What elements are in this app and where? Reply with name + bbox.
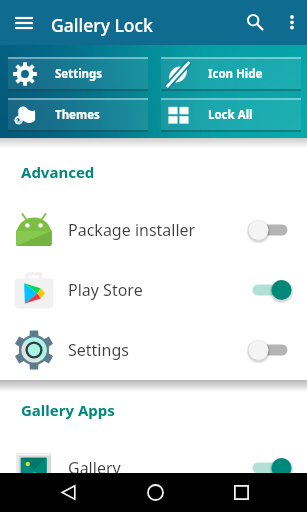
button[interactable]: Settings — [0, 320, 307, 380]
button[interactable]: Disabled toggle — [252, 218, 288, 242]
button[interactable]: Settings — [8, 57, 148, 91]
staticText: Themes — [55, 107, 100, 123]
staticText: Settings — [55, 66, 103, 82]
staticText: Lock All — [208, 107, 253, 123]
staticText: Icon Hide — [208, 66, 263, 82]
staticText: Settings — [68, 339, 252, 361]
button[interactable]: Themes — [8, 98, 148, 132]
staticText: Play Store — [68, 279, 252, 301]
staticText: Gallery Apps — [21, 400, 115, 420]
staticText: Advanced — [21, 162, 95, 182]
button[interactable]: Menu — [6, 0, 42, 45]
button[interactable]: Back — [48, 473, 88, 512]
staticText: Gallery — [68, 457, 252, 479]
button[interactable]: Lock All — [161, 98, 301, 132]
button[interactable]: Icon Hide — [161, 57, 301, 91]
button[interactable]: Play Store — [0, 260, 307, 320]
button[interactable]: Search — [237, 0, 273, 45]
staticText: Gallery Lock — [51, 13, 153, 37]
button[interactable]: Package installer — [0, 200, 307, 260]
button[interactable]: Gallery — [0, 438, 307, 498]
button[interactable]: Recents — [221, 473, 261, 512]
button[interactable]: Enabled toggle — [252, 278, 288, 302]
button[interactable]: Home — [135, 473, 175, 512]
staticText: Package installer — [68, 219, 252, 241]
button[interactable]: More options — [277, 0, 306, 45]
button[interactable]: Enabled toggle — [252, 456, 288, 480]
button[interactable]: Disabled toggle — [252, 338, 288, 362]
